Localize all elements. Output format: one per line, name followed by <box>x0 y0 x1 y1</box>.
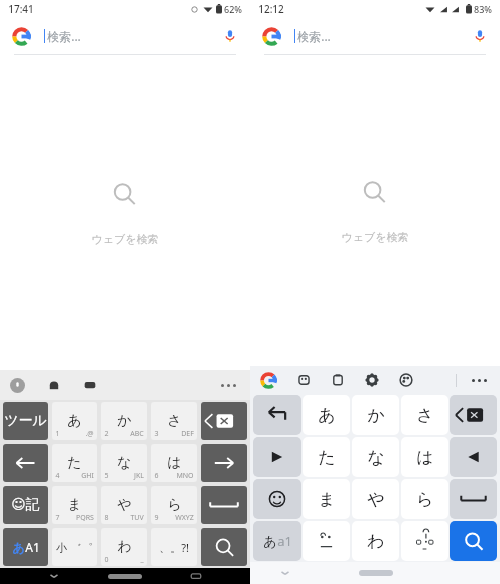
button[interactable]: space <box>450 479 497 519</box>
button[interactable]: あ <box>253 521 301 561</box>
staticText: や <box>367 489 385 510</box>
button[interactable]: 検索... <box>12 18 238 54</box>
staticText: あ <box>318 405 336 426</box>
staticText: 83% <box>474 3 492 15</box>
staticText: 12:12 <box>258 2 284 16</box>
button[interactable]: た <box>303 437 350 477</box>
button[interactable]: del <box>450 395 497 435</box>
button[interactable]: search <box>201 528 247 566</box>
button[interactable]: Themes <box>399 373 413 387</box>
button[interactable]: ☺記 <box>3 486 48 524</box>
other: Voice search <box>222 28 238 44</box>
other: Voice search <box>472 28 488 44</box>
button[interactable]: Voice search <box>222 28 238 44</box>
staticText: ウェブを検索 <box>91 232 159 246</box>
staticText: さ <box>416 405 434 426</box>
button[interactable]: right <box>450 437 497 477</box>
button[interactable]: Settings <box>365 373 379 387</box>
button[interactable]: た <box>52 444 97 482</box>
button[interactable]: な <box>352 437 399 477</box>
button[interactable]: ま <box>52 486 97 524</box>
button[interactable]: Emoji sticker <box>297 373 311 387</box>
staticText: 検索... <box>47 28 81 44</box>
button[interactable]: あ <box>303 395 350 435</box>
staticText: PQRS <box>76 513 94 523</box>
staticText: な <box>117 454 132 472</box>
button[interactable]: emoji <box>253 479 301 519</box>
staticText: ら <box>167 496 182 514</box>
staticText: 17:41 <box>8 2 34 16</box>
button[interactable]: ツール <box>3 402 48 440</box>
button[interactable]: Home <box>359 570 393 576</box>
button[interactable]: は <box>401 437 448 477</box>
staticText: あ <box>67 412 82 430</box>
button[interactable]: space <box>201 486 247 524</box>
button[interactable]: Voice input <box>10 378 25 393</box>
button[interactable]: Voice search <box>472 28 488 44</box>
staticText: は <box>416 447 434 468</box>
other: Switch keyboard <box>189 569 203 583</box>
button[interactable]: わ <box>352 521 399 561</box>
staticText: DEF <box>181 429 194 439</box>
button[interactable]: Google <box>260 372 277 389</box>
button[interactable]: left <box>3 444 48 482</box>
staticText: 3 <box>154 429 159 439</box>
staticText: 、。?! <box>159 540 189 555</box>
button[interactable]: undo <box>253 395 301 435</box>
staticText: MNO <box>176 471 194 481</box>
staticText: か <box>117 412 132 430</box>
button[interactable]: や <box>352 479 399 519</box>
button[interactable]: あ <box>52 402 97 440</box>
button[interactable]: Stickers <box>47 378 61 392</box>
button[interactable]: ら <box>151 486 197 524</box>
staticText: WXYZ <box>175 513 194 523</box>
staticText: 4 <box>55 471 60 481</box>
button[interactable]: さ <box>401 395 448 435</box>
button[interactable]: Clipboard <box>331 373 345 387</box>
staticText: a1 <box>277 532 292 550</box>
staticText: さ <box>167 412 182 430</box>
staticText: た <box>67 454 82 472</box>
button[interactable]: punct <box>401 521 448 561</box>
staticText: A1 <box>25 539 40 555</box>
button[interactable]: Home <box>108 574 142 579</box>
other: Hide keyboard <box>278 566 292 580</box>
staticText: 1 <box>55 429 60 439</box>
staticText: か <box>367 405 385 426</box>
button[interactable]: ら <box>401 479 448 519</box>
button[interactable]: 小 ゛゜ <box>52 528 97 566</box>
staticText: は <box>167 454 182 472</box>
button[interactable]: More options <box>469 376 490 385</box>
button[interactable]: 検索... <box>262 18 488 54</box>
button[interactable]: face <box>303 521 350 561</box>
button[interactable]: Clipboard <box>83 378 97 392</box>
button[interactable]: や <box>101 486 147 524</box>
button[interactable]: del <box>201 402 247 440</box>
button[interactable]: さ <box>151 402 197 440</box>
staticText: 5 <box>104 471 109 481</box>
staticText: た <box>318 447 336 468</box>
button[interactable]: は <box>151 444 197 482</box>
button[interactable]: 、。?! <box>151 528 197 566</box>
button[interactable]: わ <box>101 528 147 566</box>
staticText: 9 <box>154 513 159 523</box>
staticText: 6 <box>154 471 159 481</box>
staticText: .@ <box>85 429 94 439</box>
other: Hide keyboard <box>47 569 61 583</box>
button[interactable]: left <box>253 437 301 477</box>
button[interactable]: な <box>101 444 147 482</box>
button[interactable]: More options <box>217 380 240 391</box>
staticText: GHI <box>81 471 94 481</box>
button[interactable]: ま <box>303 479 350 519</box>
staticText: 小 ゛゜ <box>56 540 93 555</box>
button[interactable]: right <box>201 444 247 482</box>
staticText: 検索... <box>297 28 331 44</box>
staticText: ツール <box>4 412 47 430</box>
staticText: 7 <box>55 513 60 523</box>
button[interactable]: か <box>352 395 399 435</box>
button[interactable]: search <box>450 521 497 561</box>
button[interactable]: か <box>101 402 147 440</box>
staticText: ま <box>67 496 82 514</box>
button[interactable]: あ <box>3 528 48 566</box>
staticText: JKL <box>134 471 144 481</box>
